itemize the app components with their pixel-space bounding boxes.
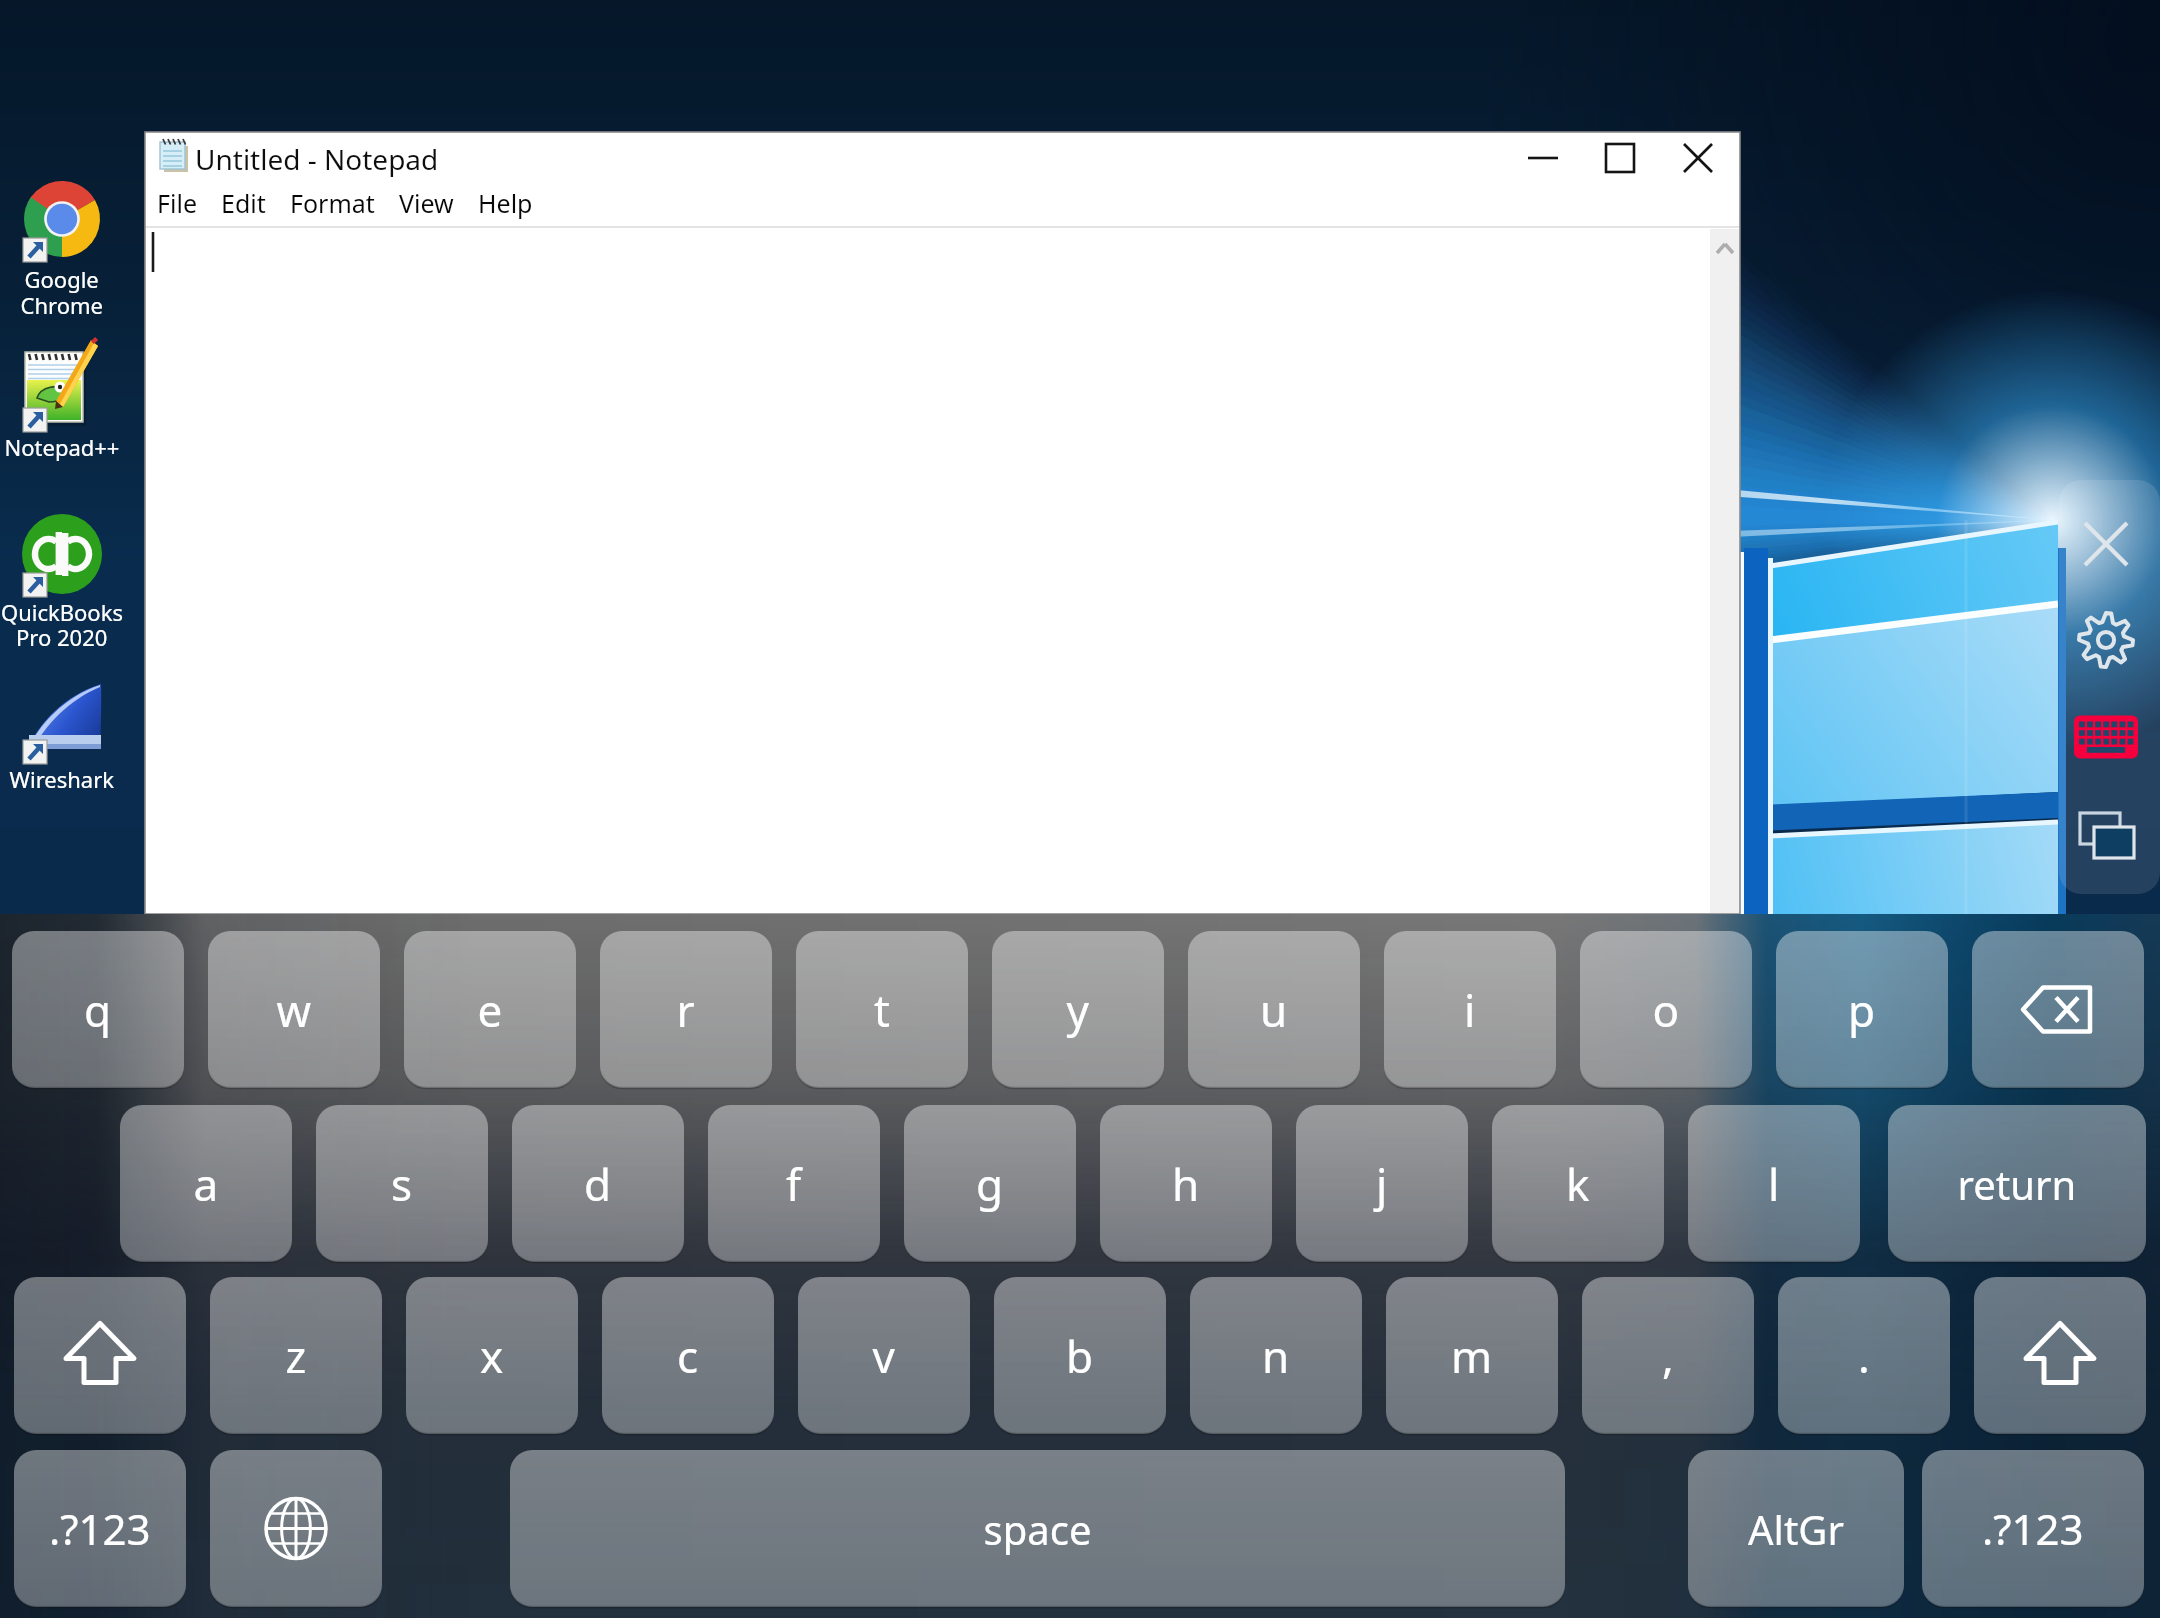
button[interactable]: j [1296,1105,1468,1262]
button[interactable]: l [1688,1105,1860,1262]
button[interactable]: q [12,931,184,1088]
button[interactable]: Show keyboard [2058,692,2160,788]
button[interactable]: Symbols [14,1450,186,1607]
button[interactable]: Shift [1974,1277,2146,1434]
button[interactable]: s [316,1105,488,1262]
button[interactable]: return [1888,1105,2146,1262]
button[interactable]: u [1188,931,1360,1088]
button[interactable]: f [708,1105,880,1262]
button[interactable]: c [602,1277,774,1434]
button[interactable]: t [796,931,968,1088]
button[interactable]: Symbols [1922,1450,2144,1607]
button[interactable]: . [1778,1277,1950,1434]
button[interactable]: Settings [2058,594,2160,688]
button[interactable]: Shift [14,1277,186,1434]
button[interactable]: , [1582,1277,1754,1434]
button[interactable]: k [1492,1105,1664,1262]
button[interactable]: n [1190,1277,1362,1434]
button[interactable]: p [1776,931,1948,1088]
button[interactable]: b [994,1277,1166,1434]
button[interactable]: Backspace [1972,931,2144,1088]
button[interactable]: y [992,931,1164,1088]
button[interactable]: space [510,1450,1565,1607]
button[interactable]: w [208,931,380,1088]
button[interactable]: Switch window [2058,790,2160,890]
button[interactable]: e [404,931,576,1088]
button[interactable]: v [798,1277,970,1434]
button[interactable]: z [210,1277,382,1434]
button[interactable]: a [120,1105,292,1262]
button[interactable]: d [512,1105,684,1262]
button[interactable]: o [1580,931,1752,1088]
button[interactable]: Change language [210,1450,382,1607]
button[interactable]: g [904,1105,1076,1262]
button[interactable]: i [1384,931,1556,1088]
button[interactable]: r [600,931,772,1088]
button[interactable]: Close session [2058,498,2160,592]
button[interactable]: m [1386,1277,1558,1434]
button[interactable]: AltGr [1688,1450,1904,1607]
button[interactable]: x [406,1277,578,1434]
button[interactable]: h [1100,1105,1272,1262]
